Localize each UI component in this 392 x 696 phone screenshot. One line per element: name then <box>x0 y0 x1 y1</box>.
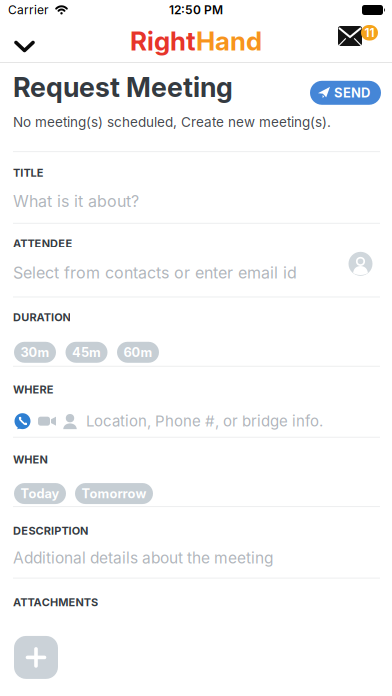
button[interactable]: What is it about? <box>0 179 392 223</box>
button[interactable]: Tomorrow <box>75 483 153 504</box>
button[interactable]: Additional details about the meeting <box>0 537 392 578</box>
button[interactable]: Today <box>14 483 66 504</box>
button[interactable]: Location, Phone #, or bridge info. <box>0 396 392 437</box>
staticText: 30m <box>20 344 49 360</box>
staticText: No meeting(s) scheduled, Create new meet… <box>13 114 331 130</box>
staticText: ATTACHMENTS <box>13 596 98 609</box>
staticText: TITLE <box>13 166 44 179</box>
staticText: Carrier <box>8 3 49 17</box>
staticText: Tomorrow <box>81 486 146 501</box>
button[interactable]: Collapse <box>0 20 35 57</box>
staticText: WHEN <box>13 453 48 466</box>
staticText: DURATION <box>13 310 70 324</box>
staticText: SEND <box>334 85 370 101</box>
staticText: Additional details about the meeting <box>13 548 274 567</box>
button[interactable]: Pick contact <box>348 224 392 276</box>
staticText: 11 <box>364 26 374 40</box>
staticText: 12:50 PM <box>169 3 223 17</box>
button[interactable]: Inbox <box>338 20 392 62</box>
button[interactable]: Select from contacts or enter email id <box>0 250 392 296</box>
button[interactable]: 30m <box>14 342 56 363</box>
button[interactable]: 45m <box>65 342 107 363</box>
button[interactable]: Send <box>310 70 381 105</box>
staticText: Today <box>20 486 59 501</box>
staticText: ATTENDEE <box>13 237 72 250</box>
staticText: DESCRIPTION <box>13 524 88 537</box>
staticText: WHERE <box>13 383 54 396</box>
staticText: Location, Phone #, or bridge info. <box>86 412 323 430</box>
staticText: Right <box>130 25 196 57</box>
staticText: Request Meeting <box>13 71 233 104</box>
staticText: What is it about? <box>13 191 139 211</box>
staticText: Select from contacts or enter email id <box>13 263 297 282</box>
button[interactable]: Add attachment <box>0 609 58 679</box>
staticText: 60m <box>123 344 152 360</box>
button[interactable]: 60m <box>117 342 159 363</box>
staticText: Hand <box>196 25 262 57</box>
staticText: 45m <box>72 344 101 360</box>
